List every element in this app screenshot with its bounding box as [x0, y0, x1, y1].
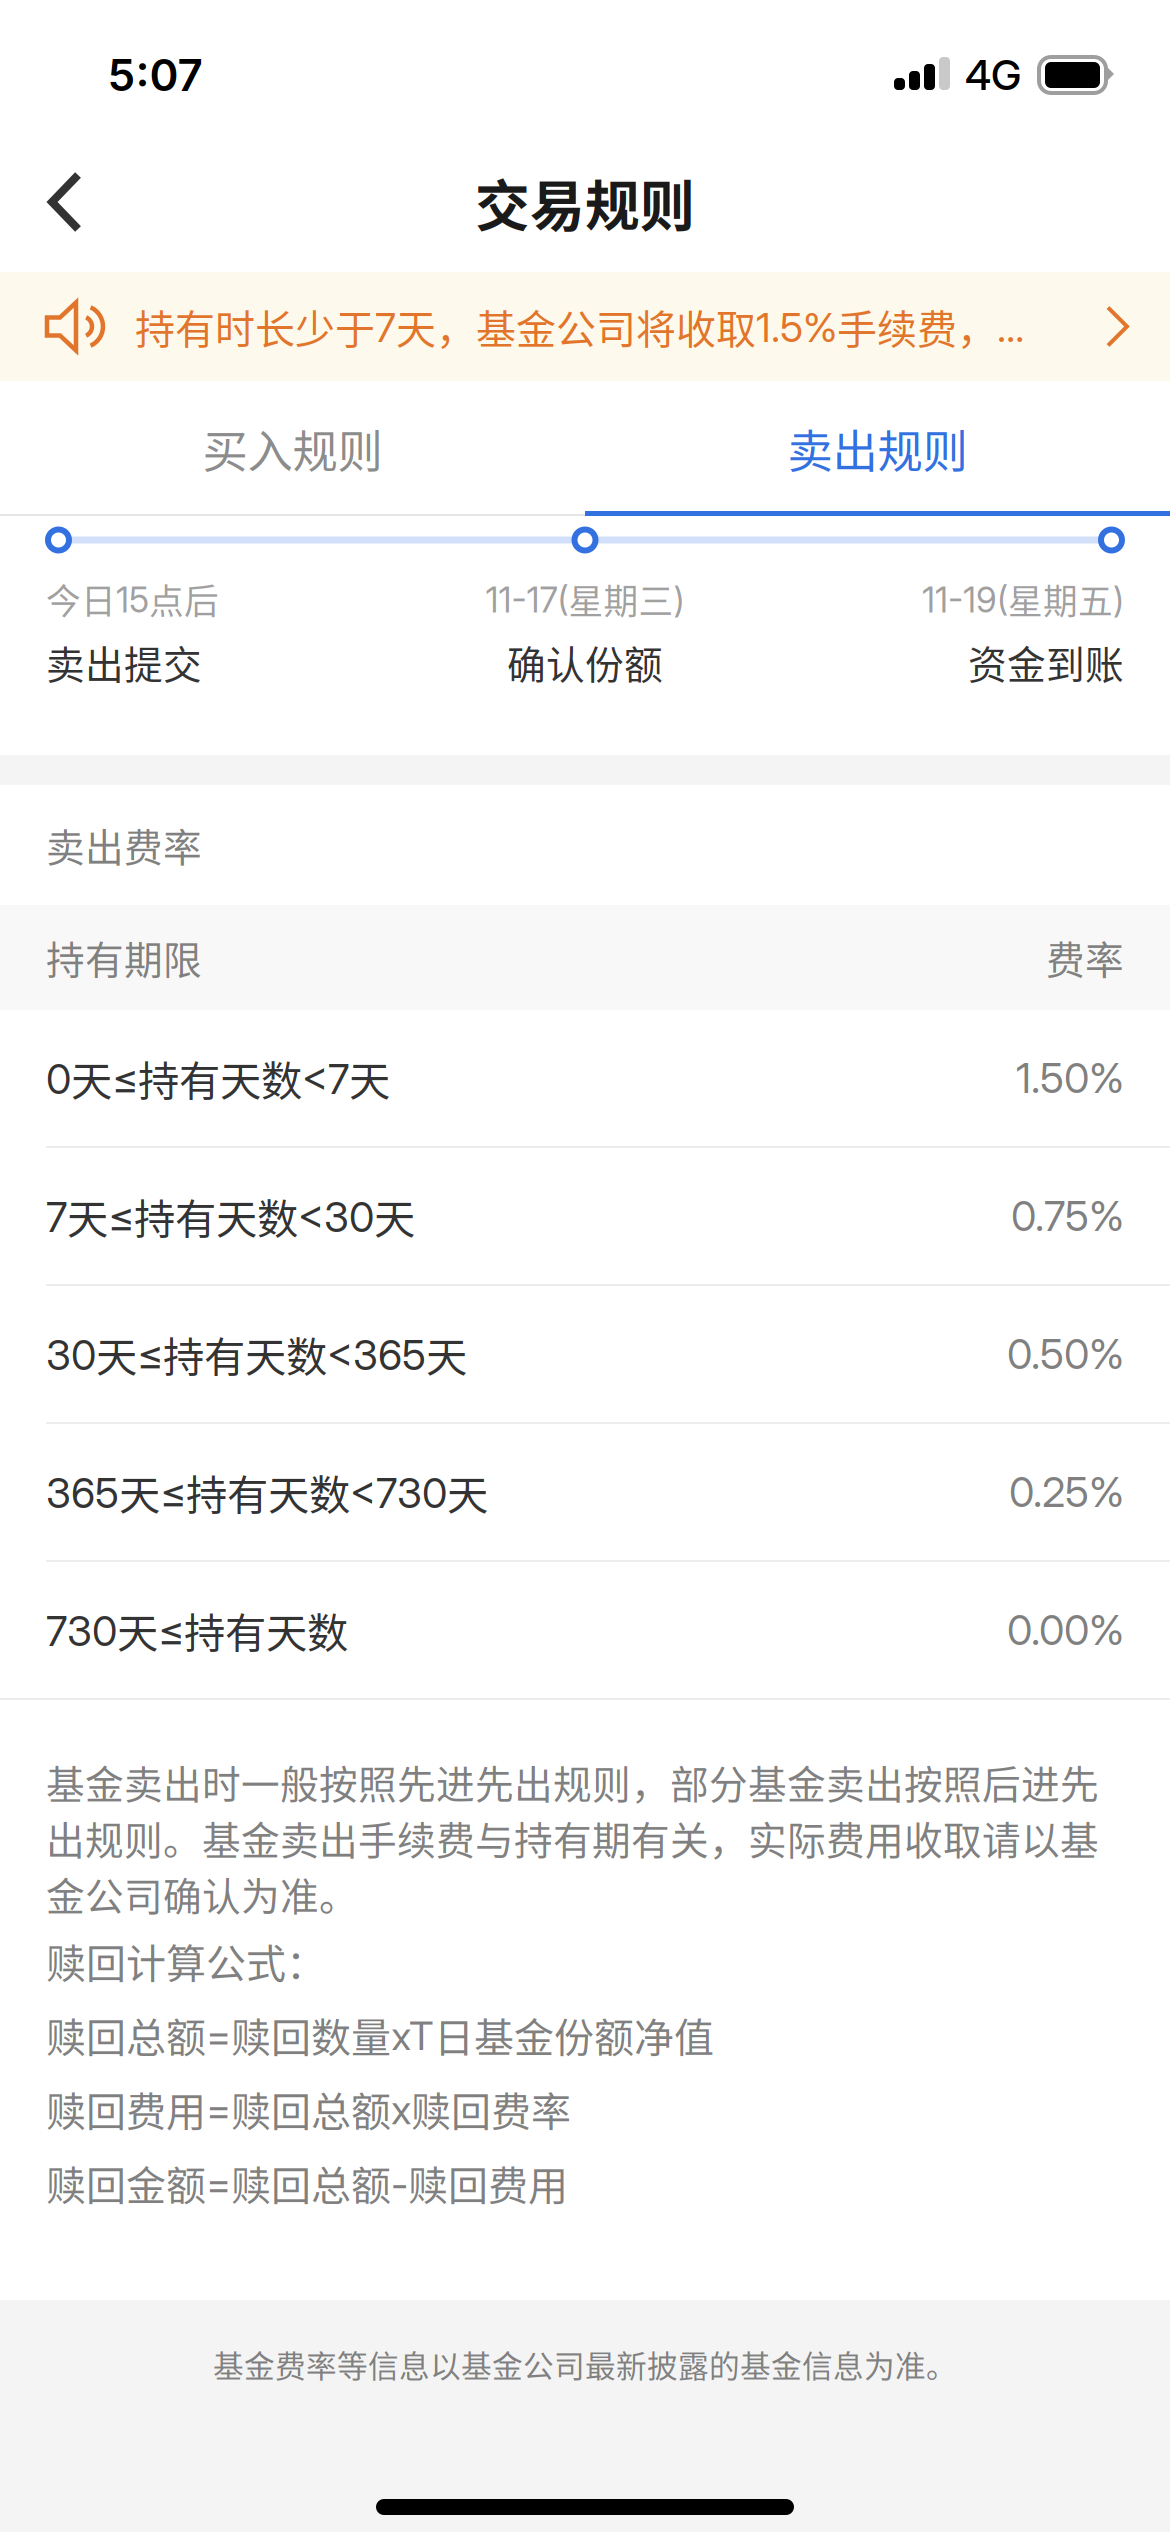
staticText: 资金到账 — [968, 634, 1124, 690]
staticText: 0天≤持有天数<7天 — [46, 1048, 390, 1108]
staticText: 卖出规则 — [787, 416, 967, 481]
staticText: 4G — [965, 50, 1021, 100]
button[interactable]: 持有时长少于7天，基金公司将收取1.5%手续费，… — [0, 272, 1170, 381]
staticText: 持有期限 — [46, 929, 202, 985]
staticText: 11-17(星期三) — [485, 574, 684, 624]
staticText: 1.50% — [1016, 1053, 1124, 1103]
staticText: 0.50% — [1007, 1329, 1124, 1379]
staticText: 交易规则 — [475, 162, 695, 242]
staticText: 卖出费率 — [46, 817, 202, 873]
staticText: 30天≤持有天数<365天 — [46, 1324, 467, 1384]
staticText: 赎回费用=赎回总额x赎回费率 — [46, 2080, 571, 2138]
staticText: 赎回总额=赎回数量xT日基金份额净值 — [46, 2006, 714, 2064]
staticText: 卖出提交 — [46, 634, 202, 690]
button[interactable]: Back — [0, 132, 123, 272]
staticText: 11-19(星期五) — [922, 574, 1124, 624]
staticText: 0.75% — [1011, 1191, 1124, 1241]
staticText: 赎回计算公式： — [46, 1932, 326, 1990]
staticText: 基金费率等信息以基金公司最新披露的基金信息为准。 — [213, 2342, 957, 2386]
staticText: 赎回金额=赎回总额-赎回费用 — [46, 2154, 568, 2212]
staticText: 今日15点后 — [46, 574, 219, 624]
staticText: 0.25% — [1009, 1467, 1124, 1517]
staticText: 5:07 — [107, 48, 202, 102]
staticText: 730天≤持有天数 — [46, 1600, 348, 1660]
staticText: 基金卖出时一般按照先进先出规则，部分基金卖出按照后进先出规则。基金卖出手续费与持… — [46, 1754, 1099, 1922]
button[interactable]: 卖出规则 — [585, 381, 1170, 516]
staticText: 365天≤持有天数<730天 — [46, 1462, 488, 1522]
staticText: 费率 — [1046, 929, 1124, 985]
staticText: 买入规则 — [202, 416, 382, 481]
button[interactable]: 买入规则 — [0, 381, 585, 516]
staticText: 持有时长少于7天，基金公司将收取1.5%手续费，… — [135, 297, 1024, 355]
staticText: 确认份额 — [507, 634, 663, 690]
staticText: 0.00% — [1007, 1605, 1124, 1655]
staticText: 7天≤持有天数<30天 — [46, 1186, 415, 1246]
